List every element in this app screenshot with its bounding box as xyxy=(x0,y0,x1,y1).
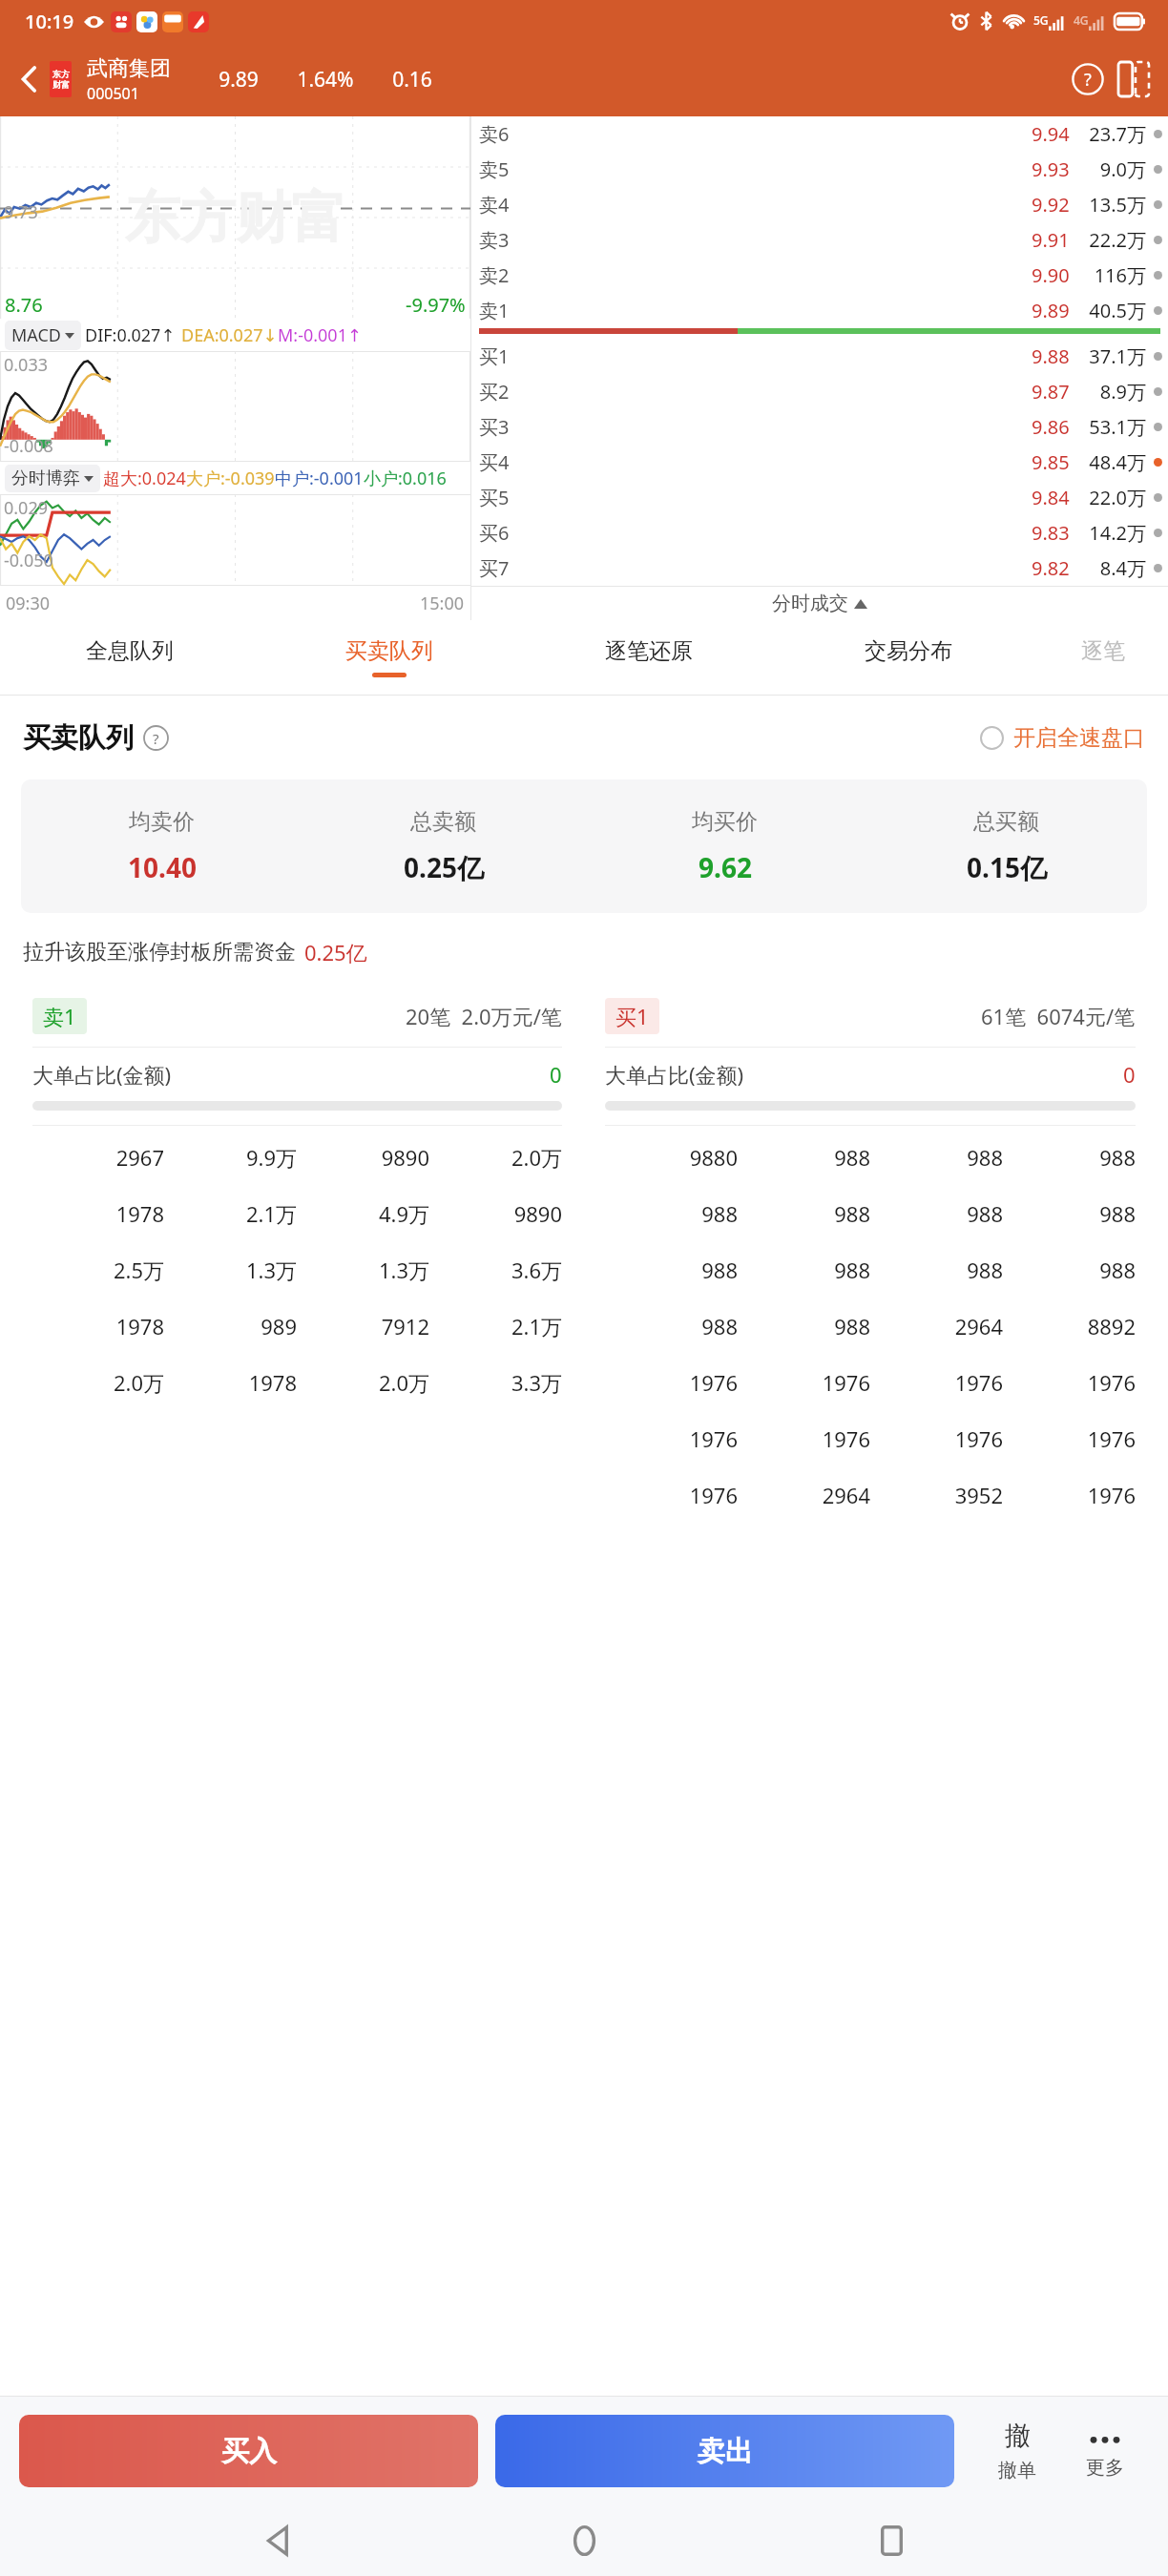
button[interactable]: Back xyxy=(8,58,50,100)
button[interactable]: 更多 xyxy=(1061,2423,1149,2480)
staticText: 9.91 xyxy=(1032,227,1070,253)
button[interactable]: 买1 xyxy=(592,986,1149,1523)
staticText: 2.1万 xyxy=(164,1199,297,1228)
staticText: 交易分布 xyxy=(865,637,952,665)
staticText: 988 xyxy=(605,1256,738,1284)
button[interactable]: 分时成交 xyxy=(471,587,1168,620)
button[interactable]: 买4 xyxy=(479,445,1162,480)
staticText: 卖1 xyxy=(43,1002,76,1030)
staticText: 1976 xyxy=(605,1368,738,1397)
staticText: 988 xyxy=(605,1312,738,1340)
staticText: 0.15亿 xyxy=(967,849,1047,885)
button[interactable]: 买6 xyxy=(479,515,1162,551)
staticText: 撤 xyxy=(1005,2420,1031,2452)
staticText: 9.73 xyxy=(4,200,38,224)
button[interactable]: 卖5 xyxy=(479,152,1162,187)
staticText: 1976 xyxy=(605,1481,738,1509)
button[interactable]: Help xyxy=(1067,58,1109,100)
staticText: 1976 xyxy=(1003,1481,1136,1509)
staticText: 2.0万 xyxy=(429,1143,562,1172)
staticText: 988 xyxy=(1003,1199,1136,1228)
staticText: 卖2 xyxy=(479,262,510,288)
staticText: 9.83 xyxy=(1032,520,1070,546)
staticText: 均买价 xyxy=(692,808,758,836)
staticText: 988 xyxy=(738,1256,870,1284)
staticText: 9.86 xyxy=(1032,414,1070,440)
button[interactable]: 买入 xyxy=(19,2415,478,2487)
staticText: 1976 xyxy=(605,1424,738,1453)
staticText: 0.033 xyxy=(4,353,49,377)
button[interactable]: 买2 xyxy=(479,374,1162,409)
staticText: 2967 xyxy=(32,1143,164,1172)
staticText: 0.029 xyxy=(4,496,49,520)
staticText: 逐笔还原 xyxy=(605,637,693,665)
staticText: 0.25亿 xyxy=(404,849,484,885)
staticText: 5G xyxy=(1033,12,1049,28)
staticText: 9.9万 xyxy=(164,1143,297,1172)
button[interactable]: 分时博弈 xyxy=(5,465,100,492)
staticText: 116万 xyxy=(1075,262,1146,288)
button[interactable]: 逐笔 xyxy=(1038,620,1168,695)
staticText: 20笔 2.0万元/笔 xyxy=(406,1002,562,1030)
staticText: 61笔 6074元/笔 xyxy=(981,1002,1136,1030)
staticText: 37.1万 xyxy=(1075,343,1146,369)
staticText: 988 xyxy=(870,1199,1003,1228)
button[interactable]: Back xyxy=(248,2511,307,2570)
staticText: 988 xyxy=(870,1256,1003,1284)
button[interactable]: 买7 xyxy=(479,551,1162,586)
staticText: 0.25亿 xyxy=(304,938,367,966)
staticText: 9.89 xyxy=(1032,298,1070,323)
staticText: 10:19 xyxy=(25,9,74,34)
staticText: 988 xyxy=(605,1199,738,1228)
staticText: 23.7万 xyxy=(1075,121,1146,147)
staticText: 拉升该股至涨停封板所需资金 xyxy=(23,939,296,966)
staticText: 9.88 xyxy=(1032,343,1070,369)
staticText: 1978 xyxy=(164,1368,297,1397)
staticText: 14.2万 xyxy=(1075,520,1146,546)
staticText: 2.5万 xyxy=(32,1256,164,1284)
button[interactable]: 说明 xyxy=(143,725,169,751)
button[interactable]: 逐笔还原 xyxy=(519,620,779,695)
staticText: 开启全速盘口 xyxy=(1013,724,1145,752)
button[interactable]: 买5 xyxy=(479,480,1162,515)
button[interactable]: 卖1 xyxy=(479,293,1162,328)
button[interactable]: 卖3 xyxy=(479,222,1162,258)
staticText: 分时博弈 xyxy=(11,467,80,489)
button[interactable]: 买3 xyxy=(479,409,1162,445)
button[interactable]: 卖6 xyxy=(479,116,1162,152)
staticText: 全息队列 xyxy=(86,637,174,665)
button[interactable]: Recents xyxy=(862,2511,921,2570)
staticText: 2964 xyxy=(870,1312,1003,1340)
button[interactable]: 交易分布 xyxy=(779,620,1038,695)
button[interactable]: MACD xyxy=(5,321,81,350)
staticText: 总卖额 xyxy=(410,808,476,836)
button[interactable]: 买卖队列 xyxy=(260,620,519,695)
staticText: 9890 xyxy=(429,1199,562,1228)
staticText: 10.40 xyxy=(128,849,197,885)
staticText: 9.82 xyxy=(1032,555,1070,581)
button[interactable]: 卖2 xyxy=(479,258,1162,293)
staticText: 1976 xyxy=(738,1424,870,1453)
staticText: 买6 xyxy=(479,520,510,546)
staticText: 逐笔 xyxy=(1081,637,1125,665)
staticText: 22.2万 xyxy=(1075,227,1146,253)
button[interactable]: 买1 xyxy=(479,339,1162,374)
staticText: 武商集团 xyxy=(87,55,171,82)
staticText: 大单占比(金额) xyxy=(605,1060,744,1089)
staticText: 均卖价 xyxy=(129,808,195,836)
staticText: 988 xyxy=(1003,1256,1136,1284)
button[interactable]: 卖出 xyxy=(495,2415,954,2487)
button[interactable]: Landscape xyxy=(1113,58,1155,100)
staticText: 更多 xyxy=(1086,2456,1124,2480)
button[interactable]: 开启全速盘口 xyxy=(980,724,1145,752)
staticText: 买入 xyxy=(221,2434,277,2469)
staticText: 东方 xyxy=(52,69,70,79)
staticText: 2.0万 xyxy=(297,1368,429,1397)
button[interactable]: 撤 xyxy=(973,2420,1061,2483)
button[interactable]: 卖4 xyxy=(479,187,1162,222)
button[interactable]: 全息队列 xyxy=(0,620,260,695)
button[interactable]: 卖1 xyxy=(19,986,575,1410)
button[interactable]: Home xyxy=(554,2511,614,2570)
staticText: 3.6万 xyxy=(429,1256,562,1284)
staticText: 卖4 xyxy=(479,192,510,218)
